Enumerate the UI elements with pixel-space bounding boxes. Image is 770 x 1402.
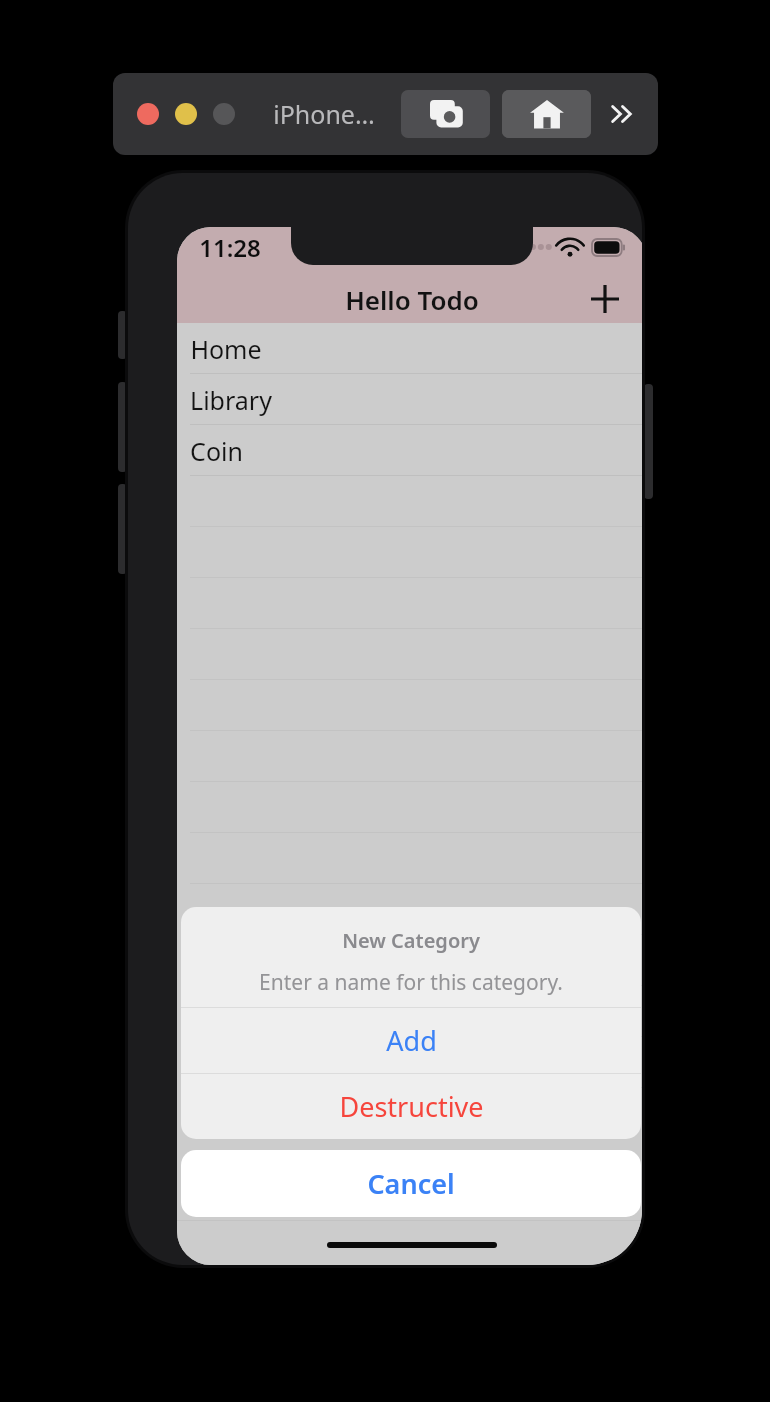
staticText: iPhone… [273,97,375,131]
button[interactable]: More options [605,97,639,131]
button[interactable]: Library [177,374,642,425]
button[interactable]: Cancel [181,1150,641,1217]
staticText: Cancel [367,1165,455,1202]
staticText: 11:28 [199,231,261,264]
button[interactable]: Screenshot [401,90,490,138]
button[interactable]: Add category [583,277,627,321]
button[interactable]: Destructive [181,1074,641,1139]
button[interactable]: Add [181,1008,641,1073]
staticText: Destructive [339,1088,484,1125]
staticText: Hello Todo [345,282,479,317]
button[interactable]: Home [502,90,591,138]
button[interactable]: Home [177,323,642,374]
staticText: Coin [190,434,243,468]
staticText: New Category [342,927,480,954]
staticText: Home [190,332,262,366]
staticText: Add [386,1022,437,1059]
button[interactable]: Coin [177,425,642,476]
staticText: Library [190,383,272,417]
button[interactable]: Zoom [213,103,235,125]
button[interactable]: Close [137,103,159,125]
staticText: Enter a name for this category. [259,968,563,997]
button[interactable]: Minimise [175,103,197,125]
